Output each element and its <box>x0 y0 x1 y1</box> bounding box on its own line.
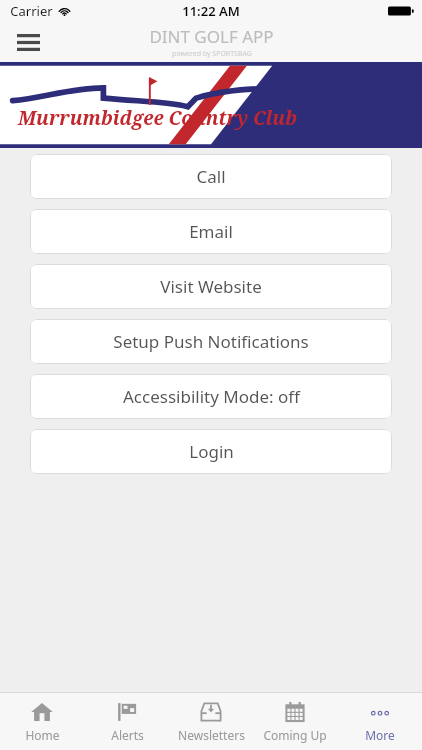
button[interactable]: Menu <box>6 22 50 62</box>
button[interactable]: Call <box>30 154 392 199</box>
staticText: More <box>365 727 395 743</box>
staticText: 11:22 AM <box>182 2 240 20</box>
staticText: Call <box>196 165 226 188</box>
staticText: DINT GOLF APP <box>149 25 274 48</box>
button[interactable]: Home <box>0 693 84 750</box>
button[interactable]: Visit Website <box>30 264 392 309</box>
staticText: Accessibility Mode: off <box>123 385 300 408</box>
staticText: Login <box>189 440 234 463</box>
staticText: Murrumbidgee Country Club <box>18 105 297 131</box>
button[interactable]: Alerts <box>85 693 169 750</box>
staticText: Carrier <box>10 2 53 20</box>
staticText: Setup Push Notifications <box>113 330 309 353</box>
staticText: Visit Website <box>160 275 262 298</box>
staticText: Alerts <box>111 727 144 743</box>
staticText: Coming Up <box>263 727 327 743</box>
button[interactable]: Login <box>30 429 392 474</box>
button[interactable]: Email <box>30 209 392 254</box>
staticText: powered by SPORTSBAG <box>172 49 252 59</box>
button[interactable]: Setup Push Notifications <box>30 319 392 364</box>
button[interactable]: More <box>338 693 422 750</box>
staticText: Home <box>25 727 60 743</box>
button[interactable]: Accessibility Mode: off <box>30 374 392 419</box>
staticText: Email <box>189 220 233 243</box>
staticText: Newsletters <box>178 727 245 743</box>
button[interactable]: Coming Up <box>253 693 337 750</box>
button[interactable]: Newsletters <box>169 693 253 750</box>
